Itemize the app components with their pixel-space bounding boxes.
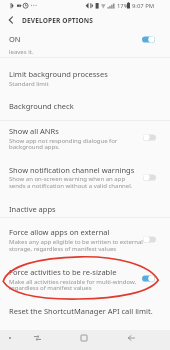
staticText: Force activities to be re-sizable xyxy=(9,267,117,277)
staticText: Limit background processes xyxy=(9,69,108,79)
button[interactable]: Switch off xyxy=(143,174,156,181)
staticText: Show notification channel warnings xyxy=(9,165,135,175)
staticText: 9:07 PM xyxy=(132,2,155,10)
staticText: storage, regardless of manifest values xyxy=(9,245,117,253)
staticText: sends a notification without a valid cha… xyxy=(9,182,133,190)
button[interactable]: Switch on xyxy=(142,36,155,43)
staticText: Make all activities resizable for multi-… xyxy=(9,278,137,286)
staticText: Makes any app eligible to be written to … xyxy=(9,238,143,246)
button[interactable] xyxy=(0,60,170,88)
staticText: leaves it. xyxy=(9,48,34,56)
staticText: Reset the ShortcutManager API call limit… xyxy=(9,306,153,316)
button[interactable] xyxy=(0,94,170,116)
button[interactable]: Navigate up xyxy=(3,12,19,28)
button[interactable]: Switch off xyxy=(143,236,156,243)
staticText: regardless of manifest values xyxy=(9,284,92,292)
button[interactable]: Back xyxy=(124,331,138,345)
button[interactable] xyxy=(0,124,170,156)
button[interactable] xyxy=(0,198,170,218)
staticText: Show app not responding dialogue for xyxy=(9,137,118,145)
staticText: Inactive apps xyxy=(9,204,56,214)
staticText: background apps. xyxy=(9,143,60,151)
staticText: ON xyxy=(9,34,21,44)
button[interactable] xyxy=(0,160,170,200)
staticText: 17% xyxy=(117,2,129,10)
button[interactable]: Recent apps xyxy=(30,331,44,345)
staticText: Show all ANRs xyxy=(9,126,59,136)
staticText: Standard limit xyxy=(9,80,49,88)
button[interactable] xyxy=(0,30,170,56)
button[interactable] xyxy=(0,302,170,324)
staticText: Show an on-screen warning when an app xyxy=(9,175,126,183)
button[interactable]: Assistant xyxy=(3,331,17,345)
button[interactable]: Switch on xyxy=(142,275,155,282)
staticText: Background check xyxy=(9,101,74,111)
button[interactable]: Switch off xyxy=(143,134,156,141)
button[interactable] xyxy=(0,264,170,298)
button[interactable]: Home xyxy=(77,331,91,345)
staticText: Force allow apps on external xyxy=(9,227,110,237)
button[interactable] xyxy=(0,220,170,252)
staticText: DEVELOPER OPTIONS xyxy=(22,16,94,25)
